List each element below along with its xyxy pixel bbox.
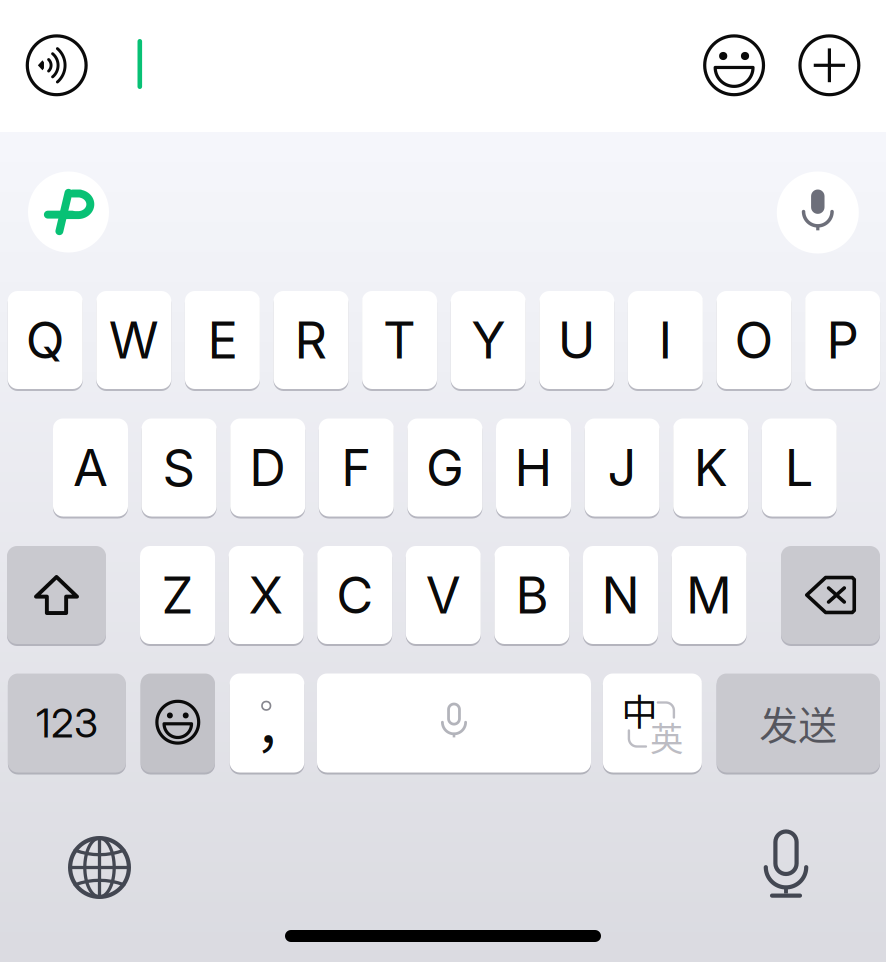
staticText: D <box>249 437 286 498</box>
button[interactable]: G <box>407 418 482 516</box>
button[interactable]: H <box>496 418 571 516</box>
button[interactable]: D <box>230 418 305 516</box>
button[interactable]: Z <box>140 546 215 644</box>
button[interactable]: Next keyboard <box>68 836 131 899</box>
button[interactable]: S <box>142 418 217 516</box>
button[interactable]: Shift <box>7 546 106 644</box>
button[interactable]: Y <box>451 291 526 389</box>
staticText: K <box>694 437 728 498</box>
staticText: X <box>249 564 284 626</box>
staticText: P <box>827 309 859 371</box>
button[interactable]: N <box>583 546 658 644</box>
staticText: H <box>514 437 552 498</box>
button[interactable]: B <box>494 546 569 644</box>
button[interactable]: Q <box>8 291 83 389</box>
button[interactable]: O <box>716 291 791 389</box>
button[interactable]: Dictation <box>764 831 808 899</box>
button[interactable]: F <box>319 418 394 516</box>
staticText: E <box>207 309 237 371</box>
button[interactable]: M <box>672 546 747 644</box>
button[interactable]: A <box>53 418 128 516</box>
button[interactable]: I <box>628 291 703 389</box>
staticText: M <box>686 564 732 626</box>
staticText: U <box>558 309 596 371</box>
staticText: N <box>601 564 639 626</box>
button[interactable]: Switch Chinese and English <box>603 673 702 772</box>
button[interactable]: C <box>317 546 392 644</box>
staticText: W <box>109 309 159 371</box>
button[interactable]: W <box>96 291 171 389</box>
staticText: O <box>734 309 773 371</box>
button[interactable]: E <box>185 291 260 389</box>
staticText: T <box>383 309 416 371</box>
staticText: V <box>426 564 461 626</box>
staticText: Q <box>26 309 65 371</box>
staticText: 发送 <box>759 695 837 751</box>
button[interactable]: T <box>362 291 437 389</box>
button[interactable]: Input method <box>28 171 109 252</box>
button[interactable]: R <box>273 291 348 389</box>
staticText: 中 <box>621 684 657 736</box>
staticText: Y <box>471 309 505 371</box>
staticText: Z <box>161 564 193 626</box>
staticText: 123 <box>36 699 98 747</box>
button[interactable]: J <box>585 418 660 516</box>
staticText: S <box>163 437 196 498</box>
staticText: G <box>426 437 464 498</box>
button[interactable]: Hold to talk <box>26 34 88 96</box>
button[interactable]: Punctuation <box>230 673 304 772</box>
staticText: I <box>658 309 672 371</box>
button[interactable]: More <box>798 34 860 96</box>
staticText: A <box>73 437 108 498</box>
button[interactable]: Voice input <box>777 171 859 253</box>
staticText: C <box>336 564 373 626</box>
button[interactable]: K <box>673 418 748 516</box>
staticText: J <box>608 437 637 498</box>
button[interactable]: 发送 <box>717 673 880 772</box>
button[interactable]: Space <box>317 673 591 772</box>
button[interactable]: V <box>406 546 481 644</box>
button[interactable]: Delete <box>781 546 880 644</box>
staticText: F <box>341 437 371 498</box>
button[interactable]: Emoji keyboard <box>141 673 215 772</box>
staticText: L <box>785 437 814 498</box>
button[interactable]: U <box>539 291 614 389</box>
button[interactable]: P <box>805 291 880 389</box>
button[interactable]: L <box>762 418 837 516</box>
button[interactable]: X <box>229 546 304 644</box>
staticText: ， <box>255 686 308 763</box>
button[interactable]: Emoji <box>703 34 765 96</box>
staticText: 英 <box>650 712 683 761</box>
button[interactable]: 123 <box>8 673 126 772</box>
staticText: B <box>515 564 548 626</box>
staticText: R <box>294 309 327 371</box>
